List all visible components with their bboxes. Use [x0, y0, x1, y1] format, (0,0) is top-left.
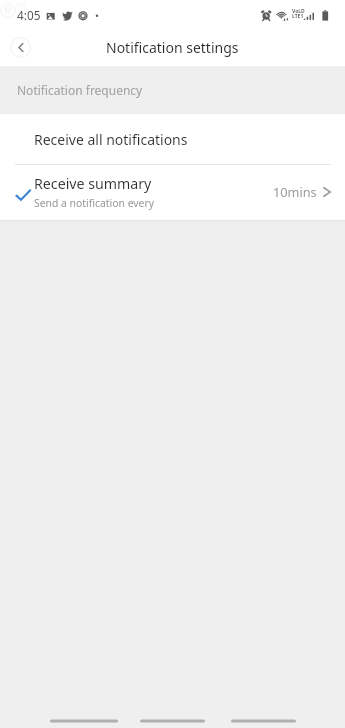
button[interactable]: Back	[10, 37, 31, 58]
staticText: Receive all notifications	[34, 130, 188, 149]
button[interactable]: Home	[128, 702, 217, 728]
button[interactable]: Recent apps	[38, 702, 130, 728]
staticText: 10mins	[273, 183, 317, 200]
staticText: Notification frequency	[17, 82, 143, 98]
staticText: Send a notification every	[34, 196, 155, 210]
button[interactable]: Back	[219, 702, 308, 728]
button[interactable]: Receive all notifications	[0, 114, 345, 164]
staticText: Receive summary	[34, 174, 152, 193]
staticText: VoLD	[292, 8, 305, 15]
staticText: Notification settings	[106, 38, 239, 57]
staticText: 4:05	[17, 7, 41, 23]
button[interactable]: Receive summary	[0, 165, 345, 220]
staticText: LTE1	[292, 13, 304, 20]
